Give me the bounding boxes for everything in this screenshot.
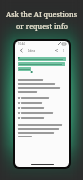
staticText: or request info bbox=[16, 21, 68, 31]
button[interactable] bbox=[18, 112, 66, 114]
button[interactable]: More options bbox=[61, 48, 66, 53]
button[interactable]: Back bbox=[18, 47, 25, 54]
staticText: Idea bbox=[28, 48, 36, 53]
button[interactable] bbox=[18, 97, 66, 99]
button[interactable] bbox=[18, 117, 66, 119]
button[interactable] bbox=[18, 102, 66, 104]
button[interactable]: Share bbox=[53, 47, 60, 54]
button[interactable] bbox=[18, 107, 66, 109]
staticText: Ask the AI questions bbox=[6, 9, 77, 19]
staticText: 10:44 bbox=[18, 42, 25, 46]
